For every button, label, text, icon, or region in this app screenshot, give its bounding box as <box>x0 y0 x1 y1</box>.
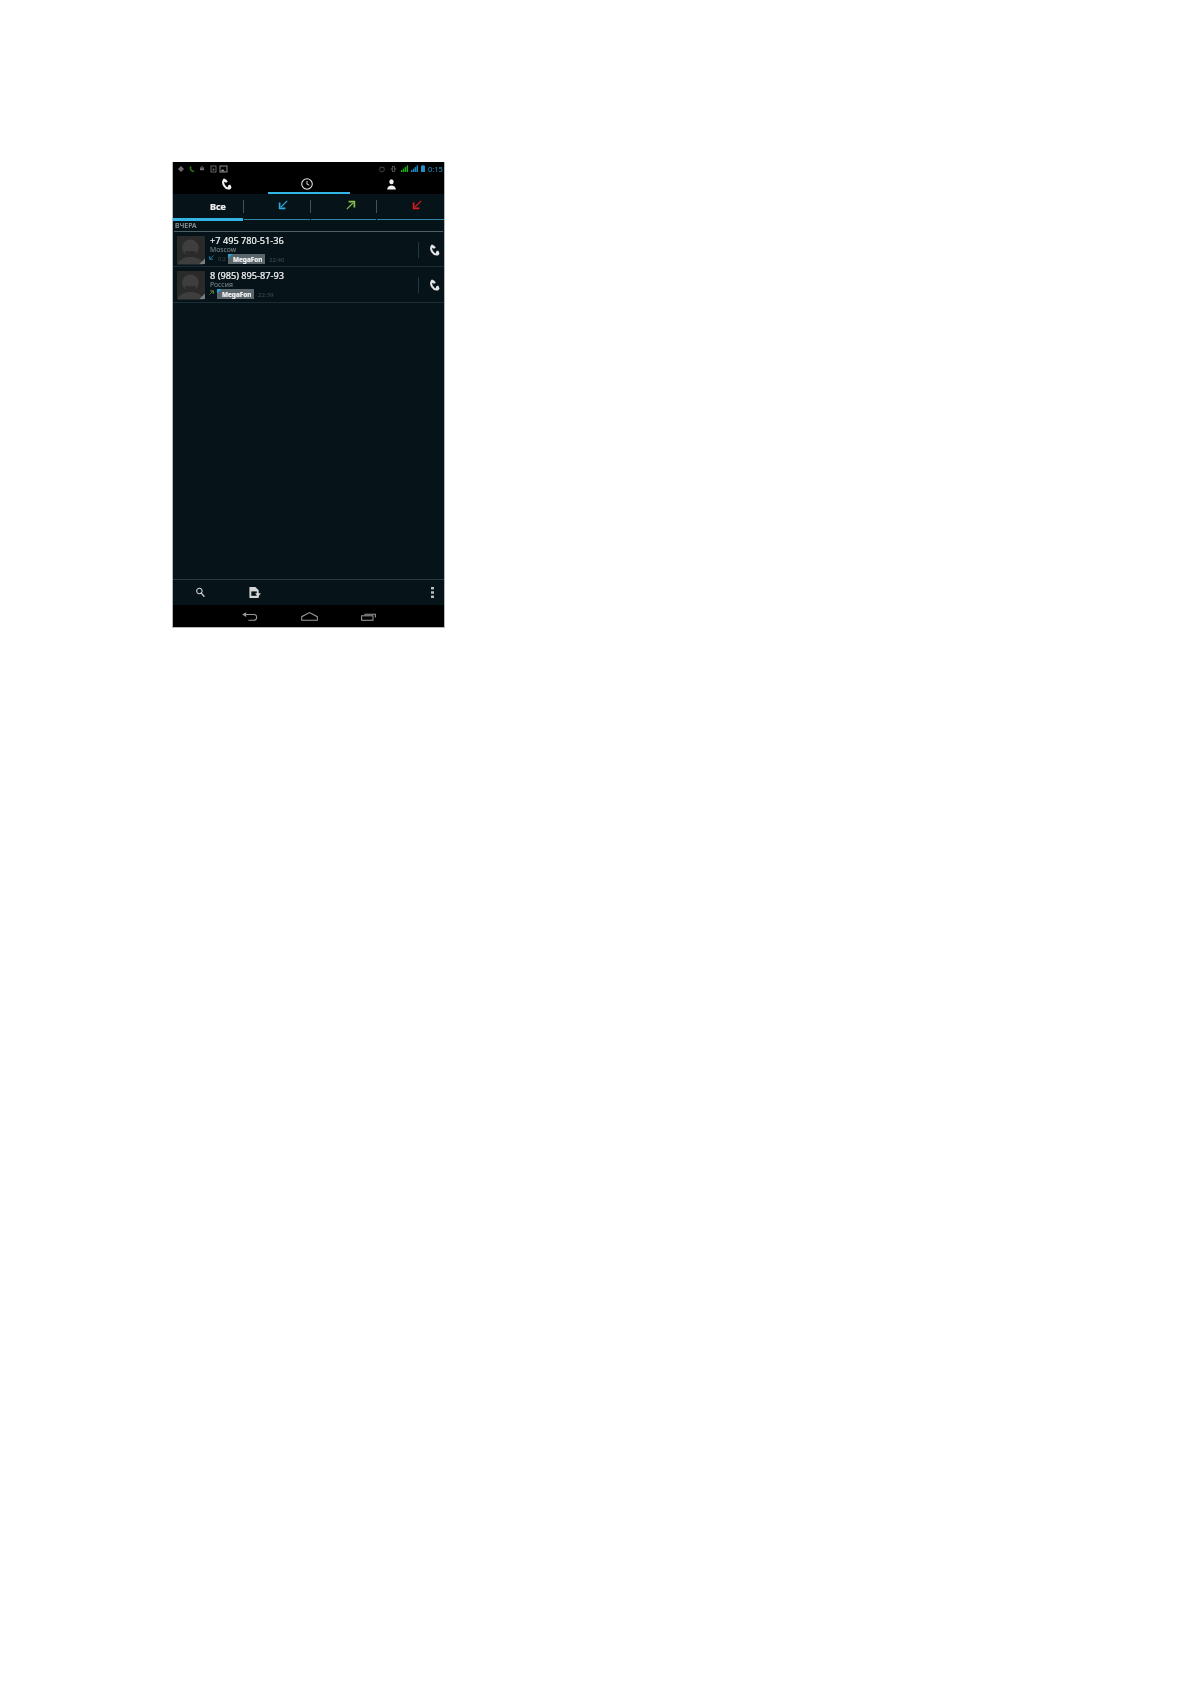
staticText: MegaFon <box>233 255 263 264</box>
button[interactable]: Call +7 495 780-51-36 <box>418 232 444 267</box>
button[interactable]: Missed calls <box>376 194 444 219</box>
staticText: ВЧЕРА <box>175 221 197 231</box>
staticText: 0:2 <box>218 255 226 263</box>
button[interactable]: 8 (985) 895-87-93 <box>173 267 418 303</box>
staticText: 8 (985) 895-87-93 <box>210 269 285 282</box>
staticText: MegaFon <box>222 290 252 299</box>
button[interactable]: Outgoing calls <box>310 194 376 219</box>
button[interactable]: All calls <box>173 194 243 219</box>
button[interactable]: Call 8 (985) 895-87-93 <box>418 267 444 303</box>
button[interactable]: Export contacts <box>237 580 271 604</box>
button[interactable]: More options <box>420 580 444 604</box>
button[interactable]: +7 495 780-51-36 <box>173 232 418 267</box>
button[interactable]: Home <box>280 605 338 627</box>
button[interactable]: Back <box>221 605 279 627</box>
staticText: Россия <box>210 280 233 289</box>
button[interactable]: Dialer <box>173 175 263 194</box>
button[interactable]: Recent calls <box>263 175 353 194</box>
button[interactable]: Incoming calls <box>243 194 310 219</box>
button[interactable]: Recent apps <box>339 605 397 627</box>
staticText: Moscow <box>210 245 237 254</box>
button[interactable]: Search <box>183 580 217 604</box>
staticText: Все <box>210 200 226 212</box>
staticText: +7 495 780-51-36 <box>210 234 284 247</box>
staticText: 0:15 <box>428 164 443 174</box>
button[interactable]: Contacts <box>354 175 444 194</box>
staticText: 22:39 <box>258 290 274 298</box>
staticText: 22:40 <box>269 255 285 263</box>
